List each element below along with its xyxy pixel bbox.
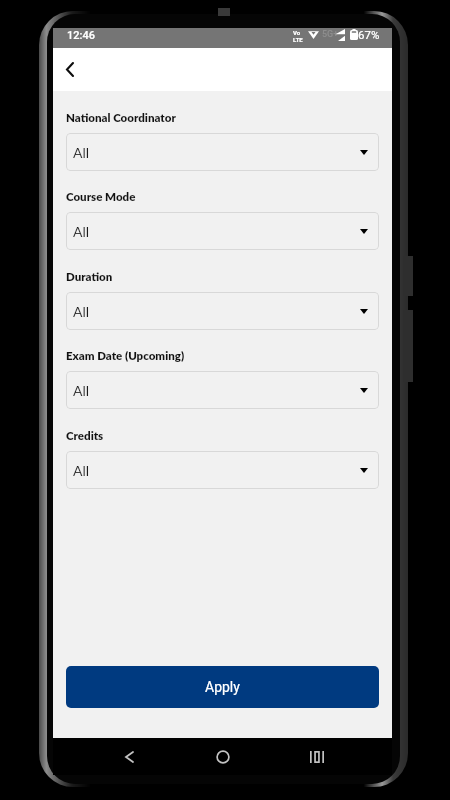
button[interactable]: Recent apps	[297, 738, 337, 775]
button[interactable]: All	[66, 133, 379, 171]
staticText: All	[73, 303, 90, 320]
staticText: National Coordinator	[66, 111, 176, 125]
staticText: Course Mode	[66, 190, 136, 204]
staticText: All	[73, 382, 90, 399]
button[interactable]: Back	[109, 738, 149, 775]
staticText: Vo	[293, 29, 301, 36]
staticText: All	[73, 223, 90, 240]
button[interactable]: Back	[52, 51, 88, 87]
staticText: LTE	[293, 36, 303, 43]
button[interactable]: All	[66, 371, 379, 409]
staticText: 67%	[358, 28, 380, 41]
staticText: Duration	[66, 270, 113, 284]
staticText: 5G+	[322, 29, 339, 40]
button[interactable]: All	[66, 451, 379, 489]
staticText: Apply	[205, 679, 240, 695]
staticText: Exam Date (Upcoming)	[66, 349, 185, 363]
staticText: Credits	[66, 429, 104, 443]
staticText: All	[73, 462, 90, 479]
button[interactable]: Apply	[66, 666, 379, 708]
staticText: 12:46	[67, 29, 95, 42]
button[interactable]: All	[66, 212, 379, 250]
staticText: All	[73, 144, 90, 161]
button[interactable]: All	[66, 292, 379, 330]
button[interactable]: Home	[203, 738, 243, 775]
